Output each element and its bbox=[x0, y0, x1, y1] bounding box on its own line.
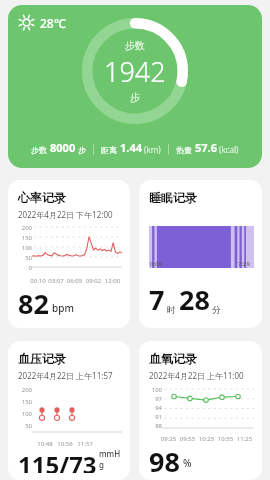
staticText: 09:25 bbox=[159, 435, 178, 443]
staticText: 98 bbox=[149, 443, 180, 473]
staticText: 82 bbox=[18, 285, 49, 318]
staticText: 分 bbox=[212, 304, 221, 315]
staticText: 100 bbox=[21, 410, 32, 418]
staticText: mmHg bbox=[99, 448, 122, 470]
staticText: 150 bbox=[21, 234, 32, 242]
staticText: 时 bbox=[167, 304, 176, 315]
staticText: % bbox=[183, 456, 192, 470]
staticText: 步数 bbox=[125, 39, 145, 52]
other: Weather sunny bbox=[18, 14, 35, 31]
staticText: (km) bbox=[144, 144, 161, 155]
staticText: 0 bbox=[28, 264, 32, 272]
staticText: 心率记录 bbox=[18, 190, 66, 205]
staticText: 7 bbox=[149, 281, 165, 318]
button[interactable]: 血氧记录 bbox=[139, 341, 262, 480]
staticText: 12:00 bbox=[103, 277, 122, 285]
staticText: 100 bbox=[21, 244, 32, 252]
button[interactable]: 睡眠记录 bbox=[139, 180, 262, 328]
staticText: 91 bbox=[155, 413, 162, 421]
staticText: 睡眠记录 bbox=[149, 190, 197, 205]
staticText: 57.6 bbox=[195, 140, 217, 155]
staticText: 94 bbox=[155, 404, 162, 412]
staticText: 115/73 bbox=[18, 448, 97, 473]
staticText: 8000 bbox=[50, 140, 76, 155]
staticText: 10:55 bbox=[216, 435, 235, 443]
staticText: 00:10 bbox=[29, 277, 47, 285]
staticText: 50 bbox=[25, 422, 32, 430]
staticText: 7:29 bbox=[238, 260, 250, 268]
staticText: 热量 bbox=[176, 145, 192, 155]
button[interactable]: 心率记录 bbox=[8, 180, 130, 328]
staticText: 200 bbox=[21, 224, 32, 232]
staticText: 11:25 bbox=[235, 435, 254, 443]
staticText: 距离 bbox=[101, 145, 117, 155]
staticText: 2022年4月22日 下午12:00 bbox=[18, 209, 113, 220]
staticText: 10:56 bbox=[55, 440, 75, 448]
staticText: 150 bbox=[21, 398, 32, 406]
staticText: 0:09 bbox=[150, 260, 162, 268]
button[interactable]: 血压记录 bbox=[8, 341, 130, 480]
staticText: 血压记录 bbox=[18, 351, 66, 366]
staticText: 血氧记录 bbox=[149, 351, 197, 366]
staticText: 88 bbox=[155, 422, 162, 430]
staticText: 1.44 bbox=[120, 140, 142, 155]
staticText: 09:55 bbox=[178, 435, 197, 443]
staticText: 10:48 bbox=[35, 440, 55, 448]
staticText: 50 bbox=[25, 254, 32, 262]
staticText: 10:25 bbox=[197, 435, 216, 443]
staticText: 步数 bbox=[31, 145, 47, 155]
staticText: 28℃ bbox=[40, 15, 66, 31]
staticText: 100 bbox=[151, 386, 162, 394]
staticText: 200 bbox=[21, 386, 32, 394]
staticText: 03:07 bbox=[47, 277, 65, 285]
staticText: 2022年4月22日 上午11:57 bbox=[18, 370, 113, 381]
staticText: 28 bbox=[179, 281, 210, 318]
staticText: 97 bbox=[155, 395, 162, 403]
staticText: 09:02 bbox=[84, 277, 103, 285]
staticText: 06:05 bbox=[65, 277, 84, 285]
button[interactable]: Weather sunny bbox=[8, 5, 262, 168]
staticText: 步 bbox=[130, 91, 140, 104]
staticText: 11:57 bbox=[75, 440, 95, 448]
staticText: 1942 bbox=[104, 53, 166, 90]
staticText: 2022年4月22日 上午11:00 bbox=[149, 370, 244, 381]
staticText: 步 bbox=[78, 145, 86, 155]
staticText: (kcal) bbox=[219, 144, 239, 155]
staticText: bpm bbox=[52, 301, 74, 315]
